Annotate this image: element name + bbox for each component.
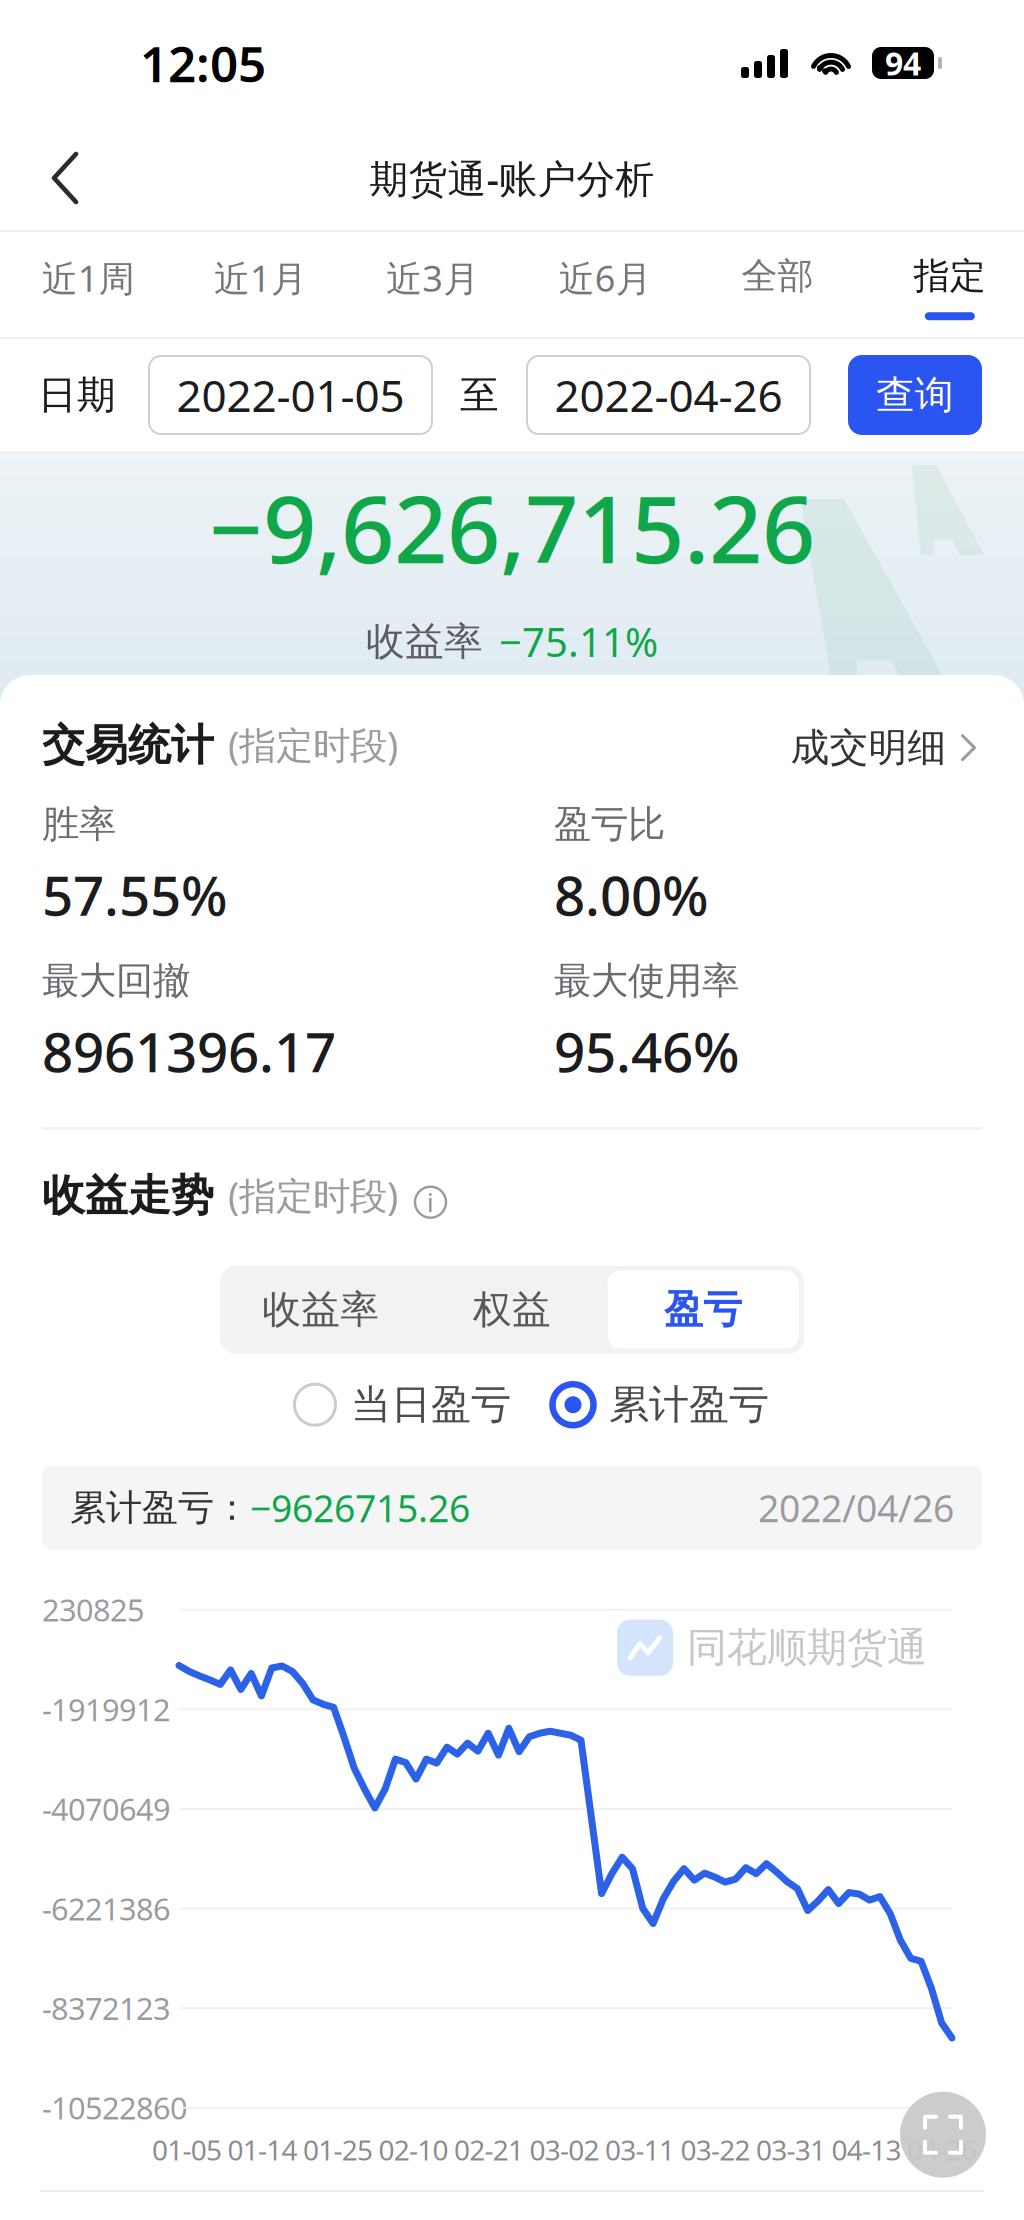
staticText: 94 bbox=[885, 42, 921, 84]
button[interactable]: 盈亏 bbox=[608, 1271, 799, 1349]
button[interactable]: 指定 bbox=[864, 232, 1024, 337]
staticText: 累计盈亏 bbox=[609, 1380, 769, 1429]
button[interactable]: 2022-01-05 bbox=[149, 356, 432, 434]
staticText: 近3月 bbox=[386, 254, 479, 302]
staticText: 全部 bbox=[741, 254, 813, 298]
button[interactable]: Expand chart bbox=[900, 2092, 986, 2178]
staticText: 8961396.17 bbox=[42, 1015, 336, 1087]
staticText: 同花顺期货通 bbox=[687, 1623, 927, 1672]
staticText: 2022-01-05 bbox=[176, 366, 404, 424]
staticText: -1919912 bbox=[42, 1689, 171, 1730]
staticText: 交易统计 bbox=[42, 719, 214, 771]
staticText: 01-14 bbox=[227, 2131, 298, 2168]
staticText: 胜率 bbox=[42, 801, 116, 847]
staticText: 成交明细 bbox=[790, 724, 946, 771]
staticText: -10522860 bbox=[42, 2087, 188, 2128]
staticText: 最大使用率 bbox=[554, 958, 739, 1004]
staticText: (指定时段) bbox=[228, 720, 398, 769]
staticText: (指定时段) bbox=[228, 1170, 398, 1220]
button[interactable]: 近3月 bbox=[347, 232, 519, 337]
staticText: 近6月 bbox=[559, 254, 652, 302]
staticText: 01-05 bbox=[152, 2131, 222, 2168]
staticText: 03-22 bbox=[680, 2131, 751, 2168]
staticText: 收益率 bbox=[262, 1286, 379, 1333]
staticText: 2022/04/26 bbox=[758, 1483, 954, 1532]
staticText: 04-26 bbox=[907, 2131, 977, 2168]
button[interactable]: 当日盈亏 bbox=[293, 1380, 511, 1429]
staticText: 当日盈亏 bbox=[351, 1380, 511, 1429]
button[interactable]: 查询 bbox=[848, 355, 982, 435]
staticText: 最大回撤 bbox=[42, 958, 190, 1004]
staticText: 近1周 bbox=[42, 254, 135, 302]
staticText: 累计盈亏： bbox=[70, 1486, 250, 1530]
button[interactable]: 收益率 bbox=[225, 1271, 416, 1349]
staticText: −9626715.26 bbox=[250, 1483, 470, 1532]
staticText: 查询 bbox=[876, 371, 954, 419]
staticText: −75.11% bbox=[499, 615, 658, 668]
button[interactable]: Info bbox=[414, 1186, 447, 1219]
staticText: i bbox=[427, 1185, 434, 1219]
staticText: 03-11 bbox=[605, 2131, 675, 2168]
staticText: 12:05 bbox=[140, 30, 266, 96]
button[interactable]: 成交明细 bbox=[790, 724, 982, 771]
button[interactable]: 近1周 bbox=[2, 232, 174, 337]
staticText: 57.55% bbox=[42, 858, 228, 931]
staticText: 95.46% bbox=[554, 1015, 740, 1087]
staticText: 日期 bbox=[38, 371, 116, 419]
button[interactable]: 近1月 bbox=[174, 232, 347, 337]
staticText: 期货通-账户分析 bbox=[369, 152, 654, 204]
staticText: 04-13 bbox=[831, 2131, 902, 2168]
button[interactable]: Back bbox=[22, 126, 108, 230]
staticText: 权益 bbox=[473, 1286, 551, 1333]
staticText: 至 bbox=[460, 371, 499, 419]
button[interactable]: 累计盈亏 bbox=[551, 1380, 769, 1429]
staticText: 03-31 bbox=[756, 2131, 826, 2168]
staticText: 收益率 bbox=[366, 618, 483, 665]
button[interactable]: 全部 bbox=[691, 232, 864, 337]
staticText: -8372123 bbox=[42, 1988, 171, 2028]
staticText: 指定 bbox=[914, 254, 986, 298]
staticText: 01-25 bbox=[303, 2131, 373, 2168]
staticText: 8.00% bbox=[554, 858, 709, 931]
staticText: -6221386 bbox=[42, 1888, 171, 1929]
button[interactable]: 2022-04-26 bbox=[527, 356, 810, 434]
staticText: 02-21 bbox=[454, 2131, 524, 2168]
staticText: 盈亏比 bbox=[554, 801, 665, 847]
button[interactable]: 近6月 bbox=[519, 232, 691, 337]
staticText: 230825 bbox=[42, 1589, 145, 1630]
staticText: 收益走势 bbox=[42, 1169, 214, 1222]
staticText: −9,626,715.26 bbox=[209, 465, 815, 589]
staticText: -4070649 bbox=[42, 1789, 171, 1829]
staticText: 02-10 bbox=[378, 2131, 449, 2168]
staticText: 2022-04-26 bbox=[554, 366, 782, 424]
button[interactable]: 权益 bbox=[416, 1271, 608, 1349]
staticText: 03-02 bbox=[529, 2131, 600, 2168]
staticText: 近1月 bbox=[214, 254, 307, 302]
staticText: 盈亏 bbox=[664, 1286, 742, 1333]
